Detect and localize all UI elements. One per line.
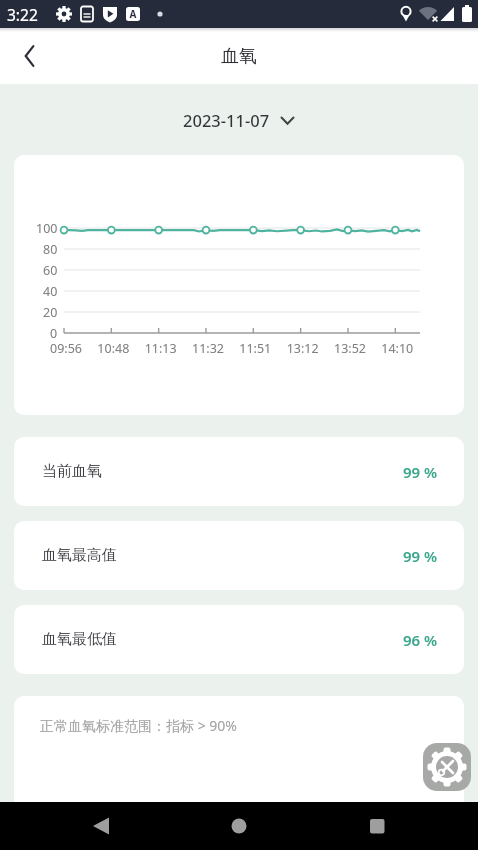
staticText: 99 %: [403, 546, 438, 566]
staticText: 血氧最低值: [42, 630, 117, 649]
button[interactable]: [160, 802, 319, 850]
button[interactable]: [0, 802, 160, 850]
staticText: 96 %: [403, 630, 438, 650]
staticText: 血氧最高值: [42, 546, 117, 565]
staticText: 血氧: [221, 45, 257, 68]
staticText: 正常血氧标准范围：指标 > 90%: [40, 716, 237, 735]
button[interactable]: [10, 36, 50, 76]
button[interactable]: 当前血氧: [14, 437, 464, 506]
button[interactable]: 血氧最低值: [14, 605, 464, 674]
button[interactable]: 血氧最高值: [14, 521, 464, 590]
staticText: 当前血氧: [42, 462, 102, 481]
staticText: 99 %: [403, 462, 438, 482]
staticText: 2023-11-07: [183, 109, 270, 131]
button[interactable]: [423, 743, 471, 791]
button[interactable]: 2023-11-07: [183, 109, 295, 131]
button[interactable]: [319, 802, 478, 850]
